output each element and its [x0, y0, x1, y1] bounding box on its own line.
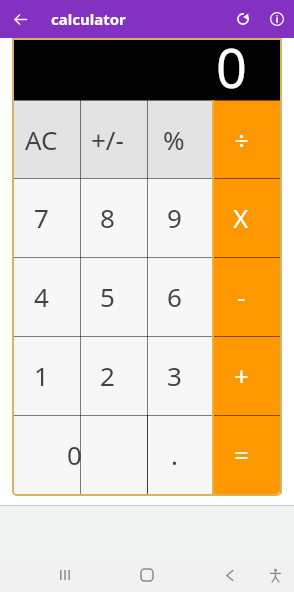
button[interactable]: %	[146, 100, 213, 178]
staticText: 0	[67, 437, 82, 472]
staticText: -	[237, 279, 246, 314]
staticText: %	[163, 122, 185, 157]
button[interactable]: 7	[14, 178, 80, 257]
button[interactable]: Accessibility	[260, 560, 290, 590]
staticText: 3	[167, 358, 182, 393]
staticText: ÷	[234, 122, 249, 157]
staticText: 5	[100, 279, 115, 314]
button[interactable]: .	[146, 415, 213, 494]
staticText: 7	[34, 200, 49, 235]
staticText: AC	[25, 122, 58, 157]
button[interactable]: Recents	[50, 560, 80, 590]
staticText: 6	[167, 279, 182, 314]
staticText: 1	[34, 358, 49, 393]
button[interactable]: =	[213, 415, 280, 494]
button[interactable]: 0	[14, 415, 146, 494]
staticText: 4	[34, 279, 49, 314]
button[interactable]: Back	[7, 6, 33, 32]
staticText: 8	[100, 200, 115, 235]
staticText: 0	[216, 40, 247, 90]
staticText: +	[234, 358, 249, 393]
staticText: 2	[100, 358, 115, 393]
button[interactable]: Home	[132, 560, 162, 590]
staticText: =	[234, 437, 249, 472]
staticText: .	[171, 437, 178, 472]
button[interactable]: X	[213, 178, 280, 257]
button[interactable]: 2	[80, 336, 146, 415]
button[interactable]: 5	[80, 257, 146, 336]
staticText: X	[233, 200, 249, 235]
button[interactable]: Back	[214, 560, 244, 590]
staticText: 9	[167, 200, 182, 235]
button[interactable]: 4	[14, 257, 80, 336]
button[interactable]: Info	[264, 6, 290, 32]
staticText: calculator	[51, 9, 126, 29]
button[interactable]: 9	[146, 178, 213, 257]
button[interactable]: +	[213, 336, 280, 415]
button[interactable]: 3	[146, 336, 213, 415]
button[interactable]: Refresh	[230, 6, 256, 32]
button[interactable]: -	[213, 257, 280, 336]
staticText: +/-	[91, 122, 124, 157]
button[interactable]: 1	[14, 336, 80, 415]
button[interactable]: 6	[146, 257, 213, 336]
button[interactable]: +/-	[80, 100, 146, 178]
button[interactable]: 8	[80, 178, 146, 257]
button[interactable]: AC	[14, 100, 80, 178]
button[interactable]: ÷	[213, 100, 280, 178]
